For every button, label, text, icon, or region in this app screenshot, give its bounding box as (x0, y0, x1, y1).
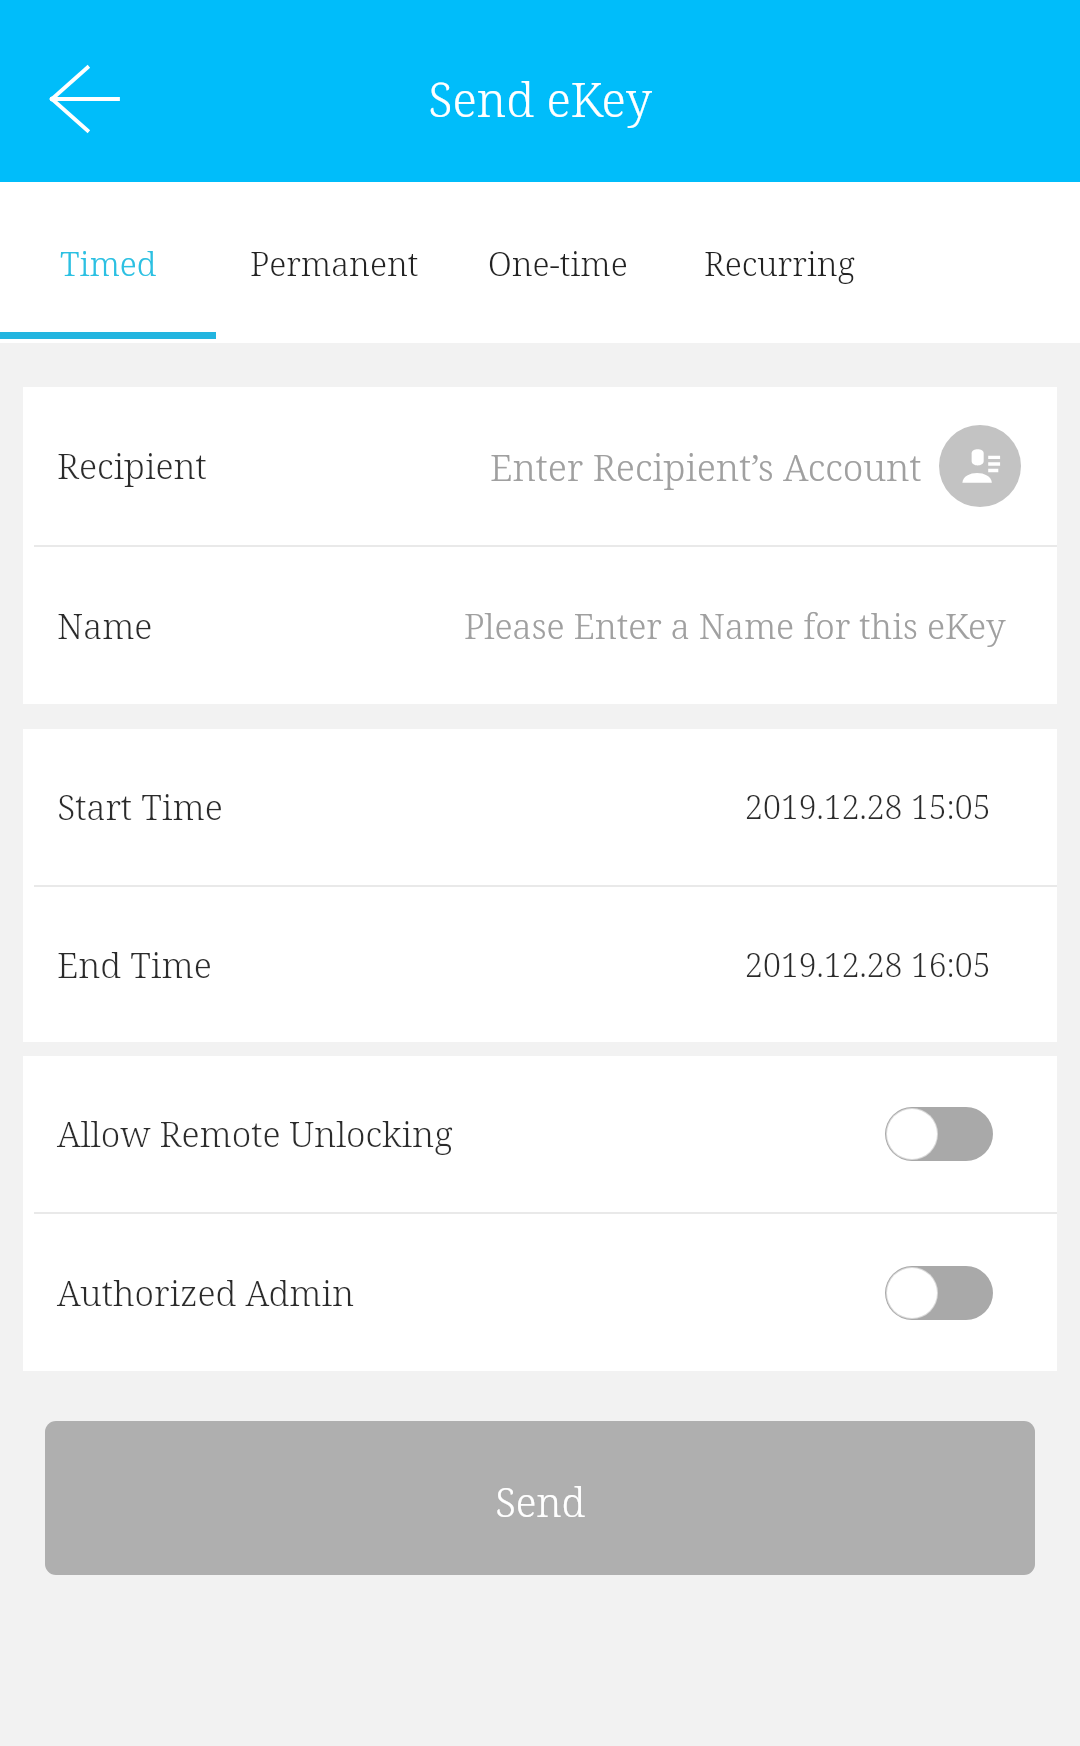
button[interactable]: Name (23, 547, 1057, 704)
staticText: 2019.12.28 15:05 (745, 785, 991, 829)
button[interactable]: Back (12, 39, 158, 159)
button[interactable]: Allow Remote Unlocking (23, 1056, 1057, 1212)
staticText: Please Enter a Name for this eKey (464, 602, 1006, 650)
button[interactable]: Allow remote unlocking (885, 1107, 993, 1161)
button[interactable]: Timed (0, 182, 218, 343)
button[interactable]: Recurring (669, 182, 889, 343)
staticText: Permanent (250, 241, 419, 286)
staticText: Send eKey (428, 67, 652, 131)
staticText: Recurring (704, 241, 855, 286)
button[interactable]: Choose contact (939, 425, 1021, 507)
button[interactable]: Send (45, 1421, 1035, 1575)
button[interactable]: Recipient (23, 387, 1057, 545)
staticText: Name (57, 602, 153, 650)
button[interactable]: Authorized admin (885, 1266, 993, 1320)
staticText: Timed (60, 241, 157, 286)
staticText: Recipient (57, 442, 207, 490)
staticText: Send (495, 1474, 586, 1528)
button[interactable]: End Time (23, 887, 1057, 1042)
button[interactable]: Permanent (224, 182, 444, 343)
button[interactable]: One-time (448, 182, 668, 343)
staticText: One-time (488, 241, 628, 286)
staticText: Start Time (57, 783, 223, 831)
staticText: Authorized Admin (57, 1269, 355, 1317)
button[interactable]: Start Time (23, 729, 1057, 885)
staticText: End Time (57, 941, 212, 989)
staticText: Enter Recipient’s Account (490, 441, 922, 491)
staticText: Allow Remote Unlocking (57, 1110, 453, 1158)
button[interactable]: Authorized Admin (23, 1214, 1057, 1371)
staticText: 2019.12.28 16:05 (745, 943, 991, 987)
